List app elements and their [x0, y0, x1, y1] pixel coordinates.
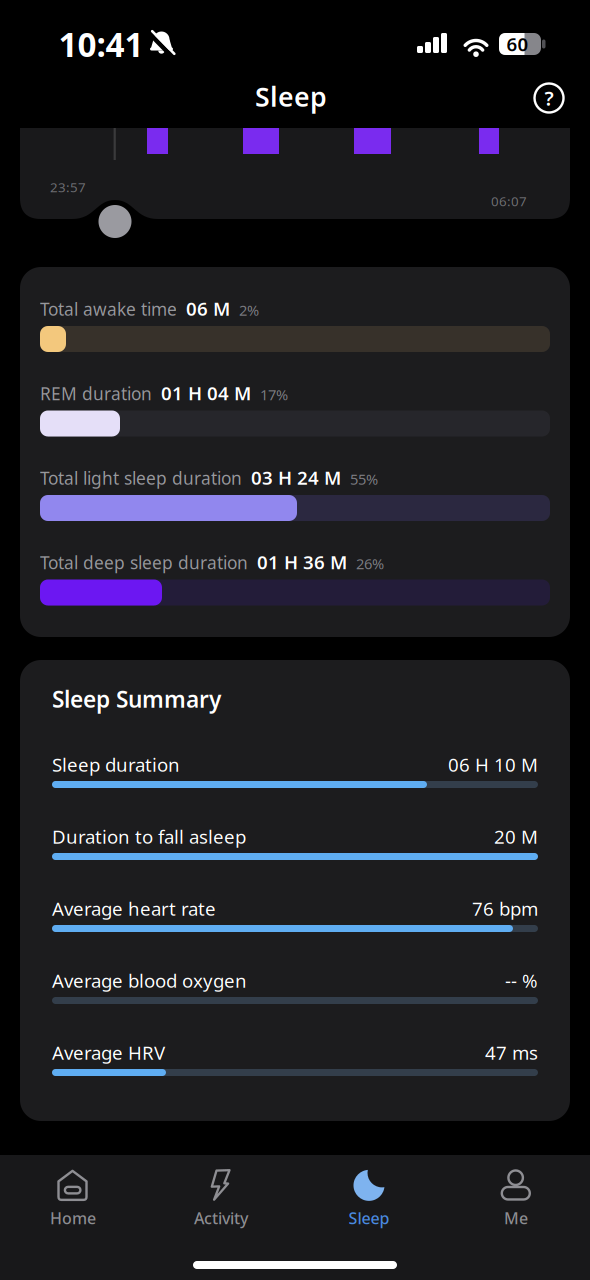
button[interactable]: Sleep [304, 1160, 434, 1238]
button[interactable]: Me [451, 1160, 581, 1238]
staticText: 2% [239, 300, 259, 320]
staticText: REM duration [40, 382, 152, 405]
staticText: 20 M [494, 824, 538, 849]
button[interactable]: ? [527, 76, 571, 120]
staticText: 26% [356, 554, 384, 573]
staticText: 03 H 24 M [251, 465, 341, 490]
staticText: Duration to fall asleep [52, 824, 246, 849]
staticText: Me [504, 1207, 528, 1229]
staticText: Average blood oxygen [52, 968, 247, 993]
staticText: 01 H 04 M [161, 380, 251, 405]
staticText: Average HRV [52, 1040, 165, 1065]
staticText: 17% [260, 385, 288, 404]
staticText: 55% [350, 469, 378, 489]
staticText: 60 [506, 32, 528, 56]
button[interactable] [98, 205, 131, 238]
staticText: Total light sleep duration [40, 466, 242, 489]
staticText: 76 bpm [472, 896, 538, 921]
staticText: Sleep duration [52, 752, 180, 777]
staticText: 10:41 [58, 22, 143, 66]
staticText: Activity [194, 1207, 248, 1229]
staticText: ? [544, 85, 553, 111]
staticText: Sleep [255, 79, 327, 114]
staticText: 47 ms [485, 1040, 538, 1065]
staticText: 06 H 10 M [448, 752, 538, 777]
staticText: Sleep [348, 1207, 389, 1229]
button[interactable]: Home [8, 1160, 138, 1238]
staticText: Total awake time [40, 297, 177, 320]
staticText: Sleep Summary [52, 684, 221, 714]
button[interactable]: Activity [156, 1160, 286, 1238]
staticText: -- % [505, 968, 538, 993]
staticText: 06:07 [491, 192, 527, 210]
staticText: Home [50, 1207, 96, 1229]
staticText: 01 H 36 M [257, 549, 347, 574]
staticText: Total deep sleep duration [40, 551, 248, 574]
staticText: Average heart rate [52, 896, 216, 921]
staticText: 06 M [186, 296, 230, 321]
staticText: 23:57 [50, 178, 86, 196]
